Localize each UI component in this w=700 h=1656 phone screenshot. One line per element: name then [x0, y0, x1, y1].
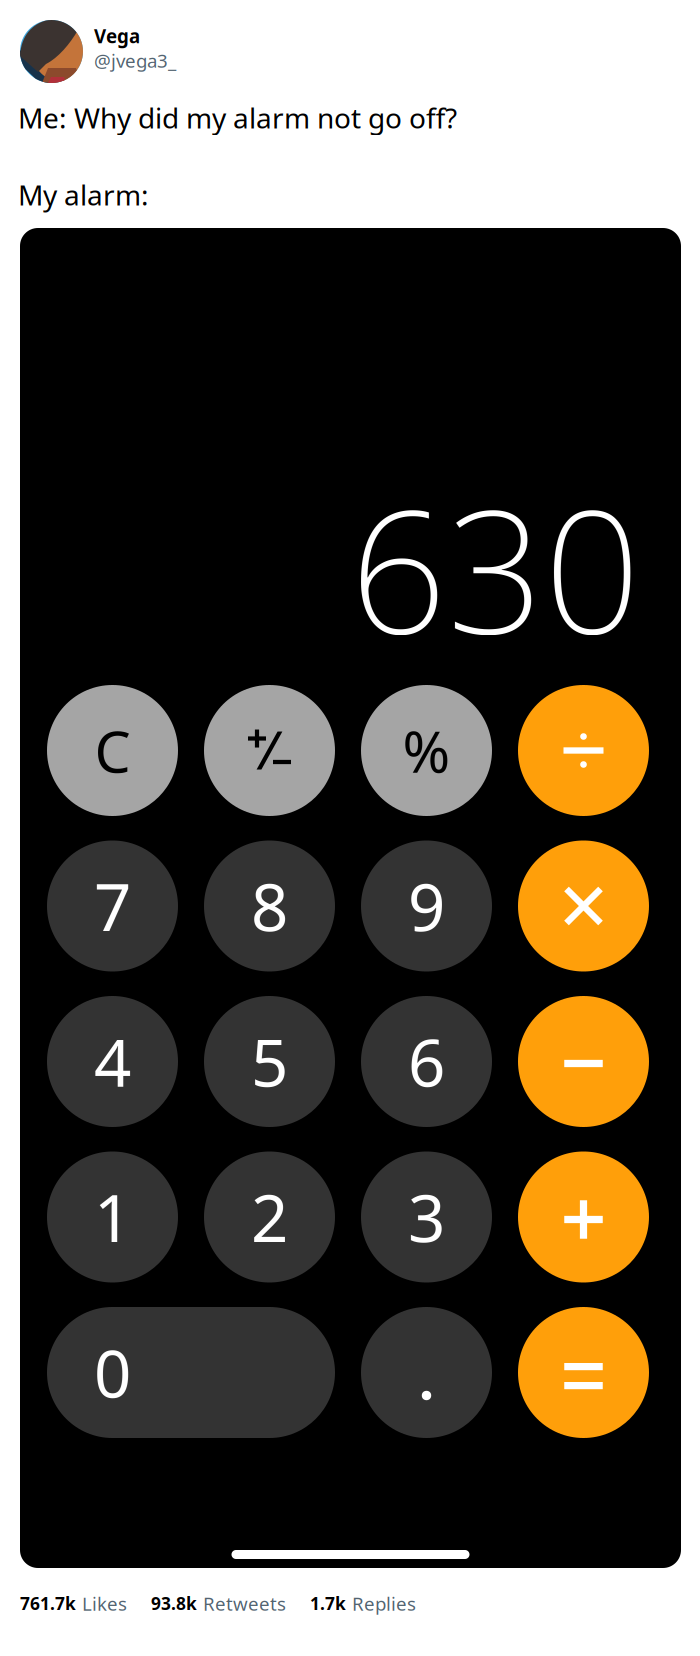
button[interactable]: 4	[47, 996, 178, 1127]
button[interactable]: Divide	[518, 685, 649, 816]
staticText: 1	[94, 1174, 131, 1260]
staticText: 9	[408, 863, 445, 949]
button[interactable]: Equals	[518, 1307, 649, 1438]
staticText: 8	[251, 863, 288, 949]
button[interactable]: 2	[204, 1151, 335, 1282]
staticText: Me: Why did my alarm not go off?	[18, 99, 457, 136]
button[interactable]: 8	[204, 840, 335, 971]
button[interactable]: 7	[47, 840, 178, 971]
button[interactable]: C	[47, 685, 178, 816]
button[interactable]: Plus	[518, 1151, 649, 1282]
button[interactable]: 3	[361, 1151, 492, 1282]
staticText: 5	[251, 1018, 288, 1105]
button[interactable]: 9	[361, 840, 492, 971]
staticText: %	[402, 712, 450, 788]
staticText: 3	[408, 1174, 445, 1260]
button[interactable]: Toggle sign	[204, 685, 335, 816]
button[interactable]: 0	[47, 1307, 335, 1438]
button[interactable]: 1	[47, 1151, 178, 1282]
button[interactable]: 5	[204, 996, 335, 1127]
button[interactable]: Multiply	[518, 840, 649, 971]
staticText: Likes	[82, 1591, 127, 1616]
staticText: 93.8k	[151, 1592, 197, 1615]
staticText: 6	[408, 1018, 445, 1105]
staticText: My alarm:	[18, 176, 149, 213]
staticText: Retweets	[203, 1591, 286, 1616]
staticText: 630	[350, 455, 641, 680]
button[interactable]: Minus	[518, 996, 649, 1127]
button[interactable]: %	[361, 685, 492, 816]
staticText: 0	[94, 1329, 131, 1416]
staticText: 4	[94, 1018, 131, 1105]
staticText: 2	[251, 1174, 288, 1260]
staticText: Vega	[94, 23, 140, 48]
staticText: C	[94, 712, 130, 788]
staticText: Replies	[352, 1591, 416, 1616]
staticText: 1.7k	[310, 1592, 346, 1615]
staticText: 7	[94, 863, 131, 949]
staticText: 761.7k	[20, 1592, 76, 1615]
button[interactable]: 6	[361, 996, 492, 1127]
staticText: @jvega3_	[94, 48, 176, 73]
button[interactable]: Decimal point	[361, 1307, 492, 1438]
